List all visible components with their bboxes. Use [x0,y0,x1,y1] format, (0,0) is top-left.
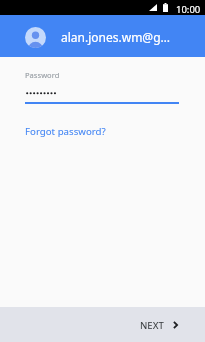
other: Account [25,27,46,48]
staticText: 10:00 [176,3,201,16]
staticText: Password [25,70,60,80]
button[interactable]: Account [0,15,205,57]
staticText: alan.jones.wm@g… [61,29,171,45]
button[interactable]: NEXT [127,310,205,339]
staticText: NEXT [140,319,164,332]
button[interactable]: Forgot password? [25,125,106,138]
